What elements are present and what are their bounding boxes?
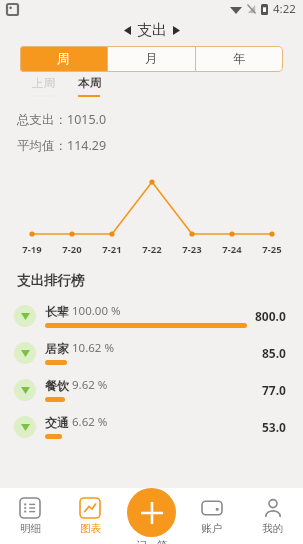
staticText: 上周 xyxy=(32,76,55,90)
staticText: 餐饮 xyxy=(45,378,69,393)
staticText: 支出 xyxy=(137,21,167,40)
button[interactable]: 我的 xyxy=(242,488,303,544)
button[interactable]: Next xyxy=(170,26,183,35)
staticText: 85.0 xyxy=(262,345,286,361)
staticText: 7-20 xyxy=(62,243,82,256)
button[interactable]: 账户 xyxy=(181,488,242,544)
staticText: 图表 xyxy=(80,522,101,535)
button[interactable]: 本周 xyxy=(66,74,112,99)
staticText: 4:22 xyxy=(273,1,296,17)
button[interactable]: 上周 xyxy=(20,74,66,99)
staticText: 9.62 % xyxy=(72,377,108,393)
staticText: 明细 xyxy=(20,522,41,535)
staticText: 77.0 xyxy=(262,382,286,398)
staticText: 6.62 % xyxy=(72,414,108,430)
staticText: 交通 xyxy=(45,415,69,430)
staticText: 账户 xyxy=(201,522,222,535)
staticText: 7-23 xyxy=(182,243,202,256)
staticText: 记一笔 xyxy=(136,539,168,544)
staticText: 7-19 xyxy=(22,243,42,256)
button[interactable]: 明细 xyxy=(0,488,60,544)
staticText: 周 xyxy=(57,51,70,67)
staticText: 100.00 % xyxy=(72,303,121,319)
button[interactable]: 长辈 xyxy=(0,297,303,334)
button[interactable]: 月 xyxy=(108,46,195,72)
staticText: 7-24 xyxy=(222,243,242,256)
staticText: 月 xyxy=(145,51,158,67)
staticText: 我的 xyxy=(262,522,283,535)
staticText: 支出排行榜 xyxy=(17,272,85,289)
staticText: 平均值：114.29 xyxy=(17,137,107,154)
staticText: 7-25 xyxy=(262,243,282,256)
staticText: 7-22 xyxy=(142,243,162,256)
button[interactable]: 记一笔 Add xyxy=(127,488,176,537)
button[interactable]: Previous xyxy=(121,26,134,35)
staticText: 10.62 % xyxy=(72,340,114,356)
staticText: 53.0 xyxy=(262,419,286,435)
button[interactable]: 周 xyxy=(20,46,107,72)
button[interactable]: 餐饮 xyxy=(0,371,303,408)
button[interactable]: 年 xyxy=(196,46,283,72)
staticText: 7-21 xyxy=(102,243,122,256)
staticText: 总支出：1015.0 xyxy=(17,111,107,128)
button[interactable]: 居家 xyxy=(0,334,303,371)
staticText: 800.0 xyxy=(255,308,286,324)
button[interactable]: 图表 xyxy=(60,488,120,544)
staticText: 本周 xyxy=(78,76,101,90)
staticText: 年 xyxy=(233,51,246,67)
staticText: 居家 xyxy=(45,341,69,356)
staticText: 长辈 xyxy=(45,304,69,319)
button[interactable]: 交通 xyxy=(0,408,303,445)
